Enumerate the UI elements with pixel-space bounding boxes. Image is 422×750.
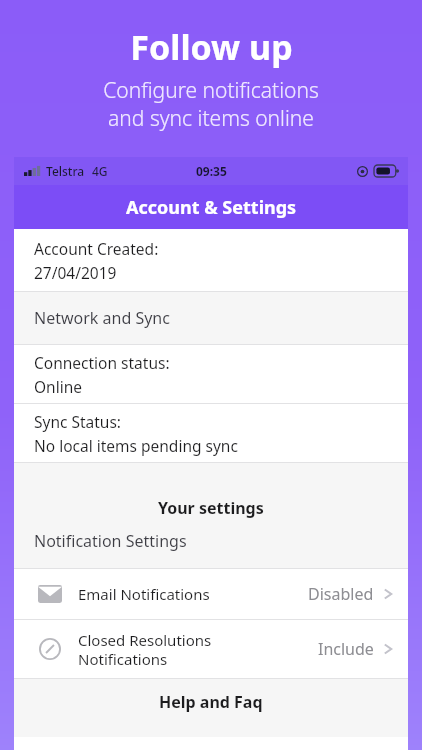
button[interactable]: Help and Faq [14, 679, 408, 737]
staticText: Telstra [46, 163, 85, 179]
staticText: Email Notifications [78, 584, 308, 604]
staticText: 27/04/2019 [34, 262, 117, 283]
staticText: Your settings [158, 497, 264, 519]
button[interactable]: Sync Status: [14, 404, 408, 462]
staticText: Online [34, 376, 83, 397]
staticText: Sync Status: [34, 411, 122, 432]
staticText: Closed Resolutions Notifications [78, 630, 318, 669]
staticText: Include [318, 638, 374, 660]
staticText: 4G [92, 163, 108, 179]
staticText: 09:35 [196, 163, 227, 179]
staticText: No local items pending sync [34, 435, 238, 456]
staticText: Notification Settings [34, 530, 187, 552]
button[interactable]: Connection status: [14, 345, 408, 403]
other: Blocked [39, 638, 61, 660]
button[interactable]: Blocked [14, 620, 408, 678]
staticText: Disabled [308, 583, 374, 605]
staticText: Account Created: [34, 238, 159, 259]
button[interactable]: Network and Sync [14, 292, 408, 344]
button[interactable]: Account Created: [14, 229, 408, 291]
staticText: Network and Sync [34, 307, 170, 329]
staticText: Connection status: [34, 352, 170, 373]
staticText: Follow up [130, 24, 293, 70]
staticText: Configure notifications and sync items o… [103, 76, 319, 132]
other: Email [38, 585, 62, 603]
staticText: Help and Faq [159, 691, 263, 713]
button[interactable]: Email [14, 569, 408, 619]
staticText: Account & Settings [126, 195, 297, 220]
